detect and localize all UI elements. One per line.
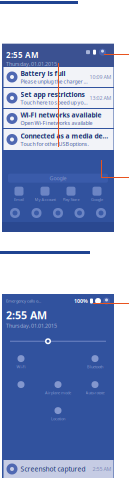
staticText: Thursday, 01.01.2015 bbox=[6, 322, 57, 329]
button[interactable]: Settings bbox=[95, 298, 101, 304]
staticText: 13:02 AM bbox=[89, 94, 111, 102]
staticText: Airplane mode bbox=[45, 390, 71, 395]
button[interactable]: Set app restrictions bbox=[3, 88, 113, 108]
staticText: 2:55 AM bbox=[6, 308, 47, 322]
staticText: Wi-Fi bbox=[16, 364, 25, 369]
button[interactable]: Location bbox=[39, 401, 76, 427]
button[interactable]: Wi-Fi networks available bbox=[3, 109, 113, 128]
button[interactable]: Battery is full bbox=[3, 67, 113, 87]
staticText: Please unplug the charger from the w… bbox=[20, 78, 87, 85]
staticText: Bluetooth bbox=[87, 364, 103, 369]
staticText: 2:55 AM bbox=[92, 465, 111, 473]
staticText: Battery is full bbox=[20, 69, 65, 78]
staticText: Connected as a media device bbox=[20, 131, 109, 140]
staticText: Google bbox=[49, 175, 66, 182]
staticText: Email bbox=[14, 197, 24, 202]
staticText: Auto-rotate bbox=[85, 390, 104, 395]
button[interactable]: Wi-Fi bbox=[2, 349, 39, 375]
staticText: Set app restrictions bbox=[20, 90, 84, 99]
button[interactable]: Connected as a media device bbox=[3, 129, 113, 150]
staticText: Play Store bbox=[62, 197, 79, 202]
staticText: Location bbox=[51, 416, 65, 421]
staticText: Screenshot captured bbox=[20, 465, 85, 473]
staticText: Wi-Fi networks available bbox=[20, 110, 101, 119]
button[interactable]: User bbox=[99, 49, 106, 56]
button[interactable]: Airplane mode bbox=[39, 375, 76, 401]
staticText: Open Wi-Fi networks available bbox=[20, 119, 92, 126]
button[interactable] bbox=[2, 375, 39, 401]
staticText: 10:09 AM bbox=[89, 73, 111, 81]
staticText: Google bbox=[91, 197, 103, 202]
button[interactable]: Auto-rotate bbox=[76, 375, 113, 401]
staticText: Touch here to speed up your device bbox=[20, 99, 87, 106]
staticText: Touch for other USB options. bbox=[20, 140, 88, 147]
button[interactable]: Bluetooth bbox=[76, 349, 113, 375]
staticText: Thursday, 01.01.2015 bbox=[6, 60, 57, 67]
staticText: My Account bbox=[34, 197, 55, 202]
button[interactable]: Screenshot captured bbox=[3, 460, 113, 478]
staticText: 2:55 AM bbox=[6, 50, 39, 60]
staticText: 100% bbox=[74, 297, 88, 305]
button[interactable]: User bbox=[103, 297, 110, 304]
staticText: Emergency calls o… bbox=[6, 298, 41, 304]
